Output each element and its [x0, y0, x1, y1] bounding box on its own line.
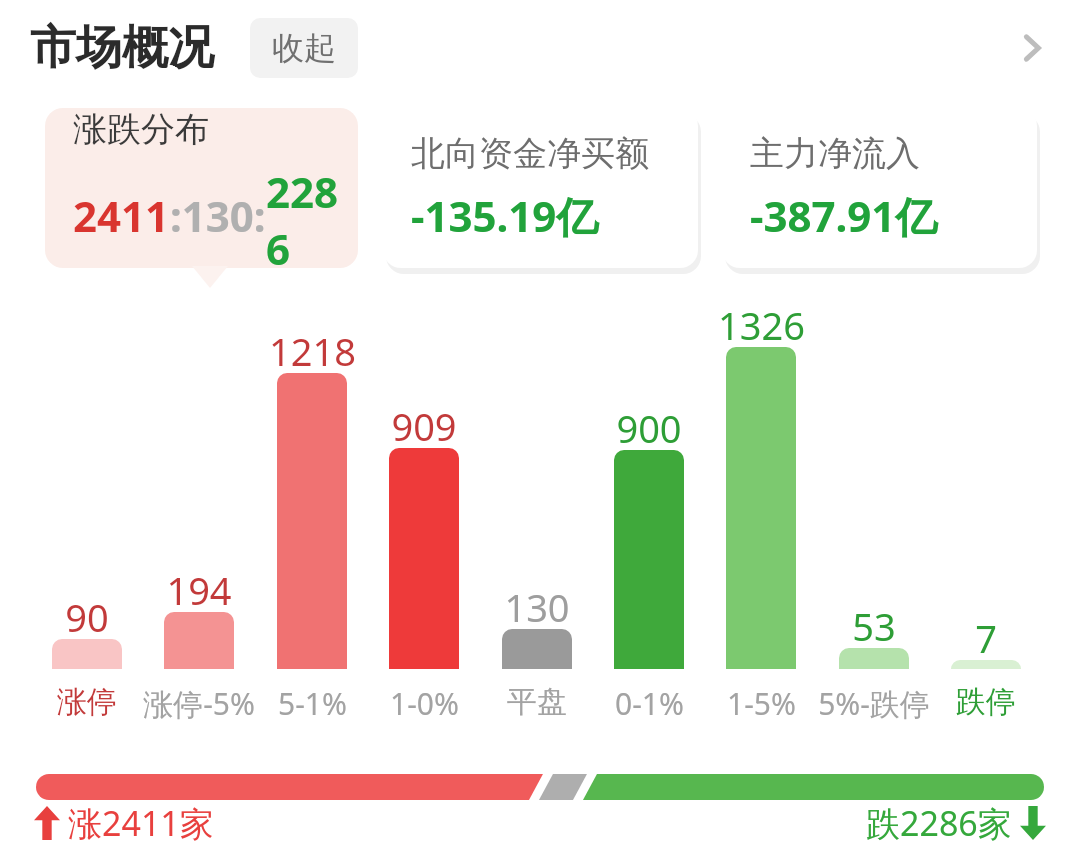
staticText: 跌2286家	[866, 800, 1012, 846]
staticText: 7	[975, 612, 997, 664]
staticText: 主力净流入	[750, 132, 920, 175]
button[interactable]: 涨2411家	[34, 800, 214, 846]
staticText: -387.91亿	[750, 187, 938, 244]
staticText: 130	[504, 581, 570, 633]
staticText: 跌停	[956, 683, 1016, 721]
staticText: 涨停	[57, 683, 117, 721]
staticText: 909	[391, 400, 457, 452]
staticText: 53	[852, 600, 896, 652]
button[interactable]: 北向资金净买额	[383, 108, 698, 268]
staticText: 平盘	[507, 683, 567, 721]
staticText: 1218	[269, 325, 356, 377]
staticText: 0-1%	[615, 683, 684, 724]
staticText: 5%-跌停	[818, 683, 930, 724]
staticText: 900	[616, 402, 682, 454]
staticText: 涨2411家	[68, 800, 214, 846]
staticText: 5-1%	[278, 683, 347, 724]
staticText: 2286	[266, 163, 358, 268]
staticText: -135.19亿	[411, 187, 599, 244]
staticText: 市场概况	[30, 19, 214, 77]
button[interactable]: 涨跌分布	[45, 108, 358, 268]
staticText: 2411	[73, 187, 170, 244]
staticText: 194	[166, 564, 232, 616]
staticText: 收起	[272, 28, 336, 68]
button[interactable]: 跌2286家	[866, 800, 1046, 846]
button[interactable]: 主力净流入	[722, 108, 1037, 268]
button[interactable]: More	[1004, 20, 1060, 76]
staticText: 北向资金净买额	[411, 132, 649, 175]
staticText: 涨跌分布	[73, 108, 209, 151]
staticText: 涨停-5%	[143, 683, 255, 724]
staticText: 1-5%	[727, 683, 796, 724]
staticText: 1326	[718, 299, 805, 351]
button[interactable]: 收起	[250, 18, 358, 78]
staticText: 90	[65, 591, 109, 643]
staticText: :130:	[170, 187, 266, 244]
staticText: 1-0%	[390, 683, 459, 724]
